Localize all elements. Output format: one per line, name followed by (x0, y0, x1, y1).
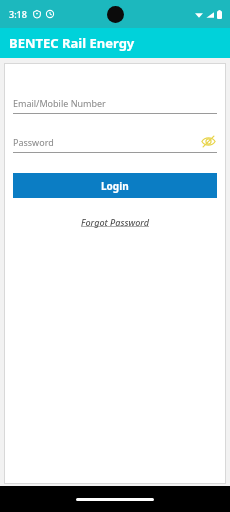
button[interactable]: Login (13, 173, 217, 198)
staticText: BENTEC Rail Energy (9, 34, 135, 52)
staticText: Forgot Password (81, 216, 149, 228)
button[interactable]: Forgot Password (77, 212, 153, 232)
staticText: 3:18 (9, 8, 27, 20)
staticText: Login (101, 179, 129, 193)
staticText: Email/Mobile Number (13, 97, 106, 109)
staticText: Password (13, 136, 54, 148)
button[interactable]: Show password (199, 133, 217, 150)
